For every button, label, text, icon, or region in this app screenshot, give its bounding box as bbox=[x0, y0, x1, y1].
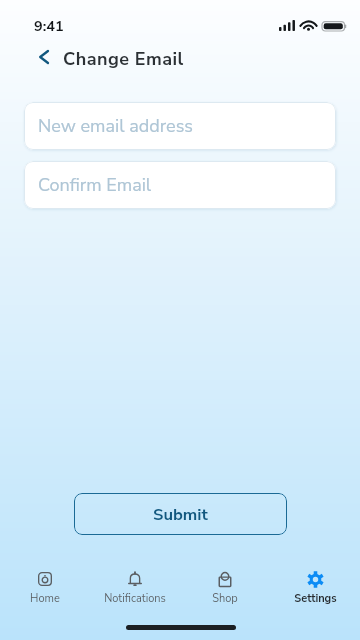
staticText: Home bbox=[30, 591, 60, 606]
button[interactable]: Back bbox=[31, 44, 57, 70]
button[interactable]: Notifications bbox=[90, 569, 180, 609]
button[interactable]: Submit bbox=[74, 493, 287, 535]
staticText: Change Email bbox=[63, 47, 184, 72]
button[interactable]: Settings bbox=[270, 569, 360, 609]
button[interactable]: Confirm Email bbox=[24, 161, 336, 209]
button[interactable]: Home bbox=[0, 569, 90, 609]
staticText: Settings bbox=[294, 591, 337, 606]
staticText: Confirm Email bbox=[38, 173, 152, 198]
staticText: Shop bbox=[212, 591, 238, 606]
staticText: Notifications bbox=[104, 591, 166, 606]
staticText: New email address bbox=[38, 114, 193, 139]
button[interactable]: New email address bbox=[24, 102, 336, 150]
staticText: Submit bbox=[153, 503, 208, 526]
staticText: 9:41 bbox=[34, 16, 64, 36]
button[interactable]: Shop bbox=[180, 569, 270, 609]
